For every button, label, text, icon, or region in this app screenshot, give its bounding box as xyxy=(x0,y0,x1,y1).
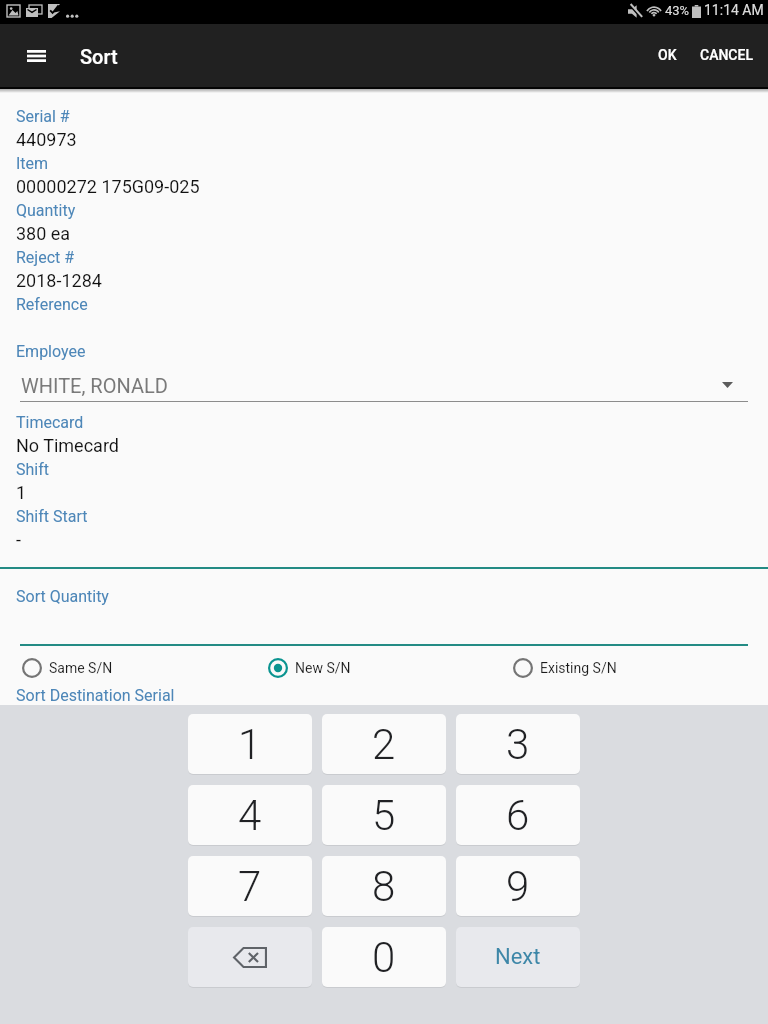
staticText: Item xyxy=(16,154,49,173)
staticText: 2018-1284 xyxy=(16,270,102,291)
staticText: 2 xyxy=(372,720,396,769)
staticText: 00000272 175G09-025 xyxy=(16,176,200,197)
button[interactable]: OK xyxy=(641,31,693,79)
staticText: OK xyxy=(658,47,677,63)
staticText: 6 xyxy=(506,791,530,840)
button[interactable]: 7 xyxy=(188,856,312,916)
button[interactable]: 4 xyxy=(188,785,312,845)
staticText: Sort Quantity xyxy=(16,587,109,606)
staticText: - xyxy=(16,529,21,550)
button[interactable]: 0 xyxy=(322,927,446,987)
staticText: Next xyxy=(495,944,541,970)
staticText: No Timecard xyxy=(16,435,119,456)
staticText: 3 xyxy=(506,720,530,769)
staticText: 380 ea xyxy=(16,223,71,244)
staticText: 440973 xyxy=(16,129,77,150)
button[interactable]: 6 xyxy=(456,785,580,845)
button[interactable]: 5 xyxy=(322,785,446,845)
staticText: Sort Destination Serial xyxy=(16,686,175,705)
staticText: Timecard xyxy=(16,413,84,432)
staticText: Reject # xyxy=(16,248,75,267)
button[interactable]: Open navigation menu xyxy=(12,32,60,80)
staticText: 43% xyxy=(665,3,690,18)
staticText: 5 xyxy=(372,791,396,840)
button[interactable]: 3 xyxy=(456,714,580,774)
staticText: New S/N xyxy=(295,660,351,676)
staticText: 9 xyxy=(506,862,530,911)
staticText: Sort xyxy=(80,45,118,68)
button[interactable]: CANCEL xyxy=(691,31,761,79)
button[interactable]: Existing S/N xyxy=(513,658,617,678)
staticText: 11:14 AM xyxy=(704,2,764,18)
button[interactable]: 1 xyxy=(188,714,312,774)
button[interactable]: Backspace xyxy=(188,927,312,987)
staticText: Same S/N xyxy=(49,660,113,676)
staticText: Shift xyxy=(16,460,49,479)
button[interactable]: 2 xyxy=(322,714,446,774)
staticText: 1 xyxy=(16,482,27,503)
staticText: Existing S/N xyxy=(540,660,617,676)
staticText: 1 xyxy=(238,720,262,769)
staticText: WHITE, RONALD xyxy=(21,374,168,397)
button[interactable]: 8 xyxy=(322,856,446,916)
staticText: Reference xyxy=(16,295,88,314)
staticText: 4 xyxy=(238,791,262,840)
staticText: Serial # xyxy=(16,107,70,126)
button[interactable]: Next xyxy=(456,927,580,987)
button[interactable]: 9 xyxy=(456,856,580,916)
button[interactable]: Employee: WHITE, RONALD xyxy=(16,368,748,404)
staticText: 8 xyxy=(372,862,396,911)
staticText: 7 xyxy=(238,862,262,911)
button[interactable]: Same S/N xyxy=(22,658,113,678)
button[interactable]: New S/N xyxy=(268,658,351,678)
staticText: Quantity xyxy=(16,201,76,220)
staticText: CANCEL xyxy=(700,47,753,63)
staticText: Employee xyxy=(16,342,86,361)
staticText: 0 xyxy=(372,933,396,982)
staticText: Shift Start xyxy=(16,507,88,526)
